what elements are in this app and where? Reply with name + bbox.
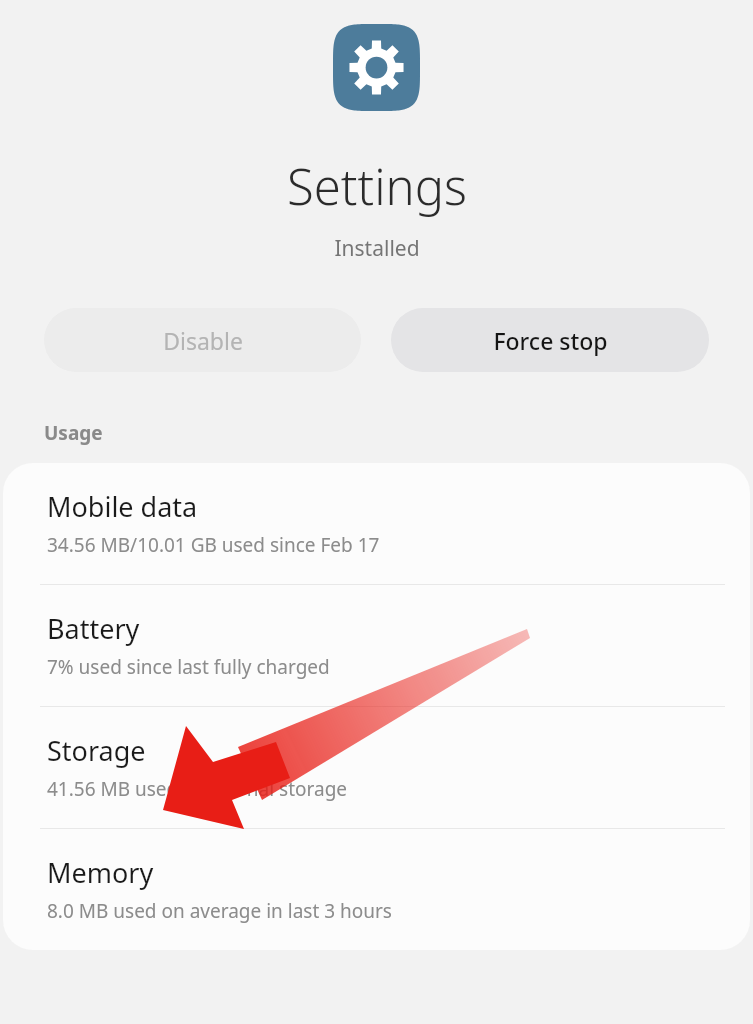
- button[interactable]: Force stop: [391, 308, 709, 372]
- button[interactable]: Mobile data: [3, 463, 750, 584]
- staticText: 34.56 MB/10.01 GB used since Feb 17: [47, 532, 380, 558]
- staticText: 8.0 MB used on average in last 3 hours: [47, 898, 392, 924]
- button[interactable]: Disable: [44, 308, 361, 372]
- staticText: Mobile data: [47, 488, 198, 525]
- button[interactable]: Storage: [3, 707, 750, 828]
- staticText: Storage: [47, 732, 146, 769]
- staticText: Force stop: [493, 325, 608, 356]
- button[interactable]: Memory: [3, 829, 750, 950]
- staticText: 7% used since last fully charged: [47, 654, 330, 680]
- staticText: Usage: [44, 420, 103, 446]
- staticText: Battery: [47, 610, 140, 647]
- staticText: Settings: [287, 153, 467, 220]
- staticText: Memory: [47, 854, 154, 891]
- staticText: 41.56 MB used in internal storage: [47, 776, 348, 802]
- button[interactable]: Battery: [3, 585, 750, 706]
- staticText: Disable: [163, 325, 243, 356]
- staticText: Installed: [334, 234, 420, 263]
